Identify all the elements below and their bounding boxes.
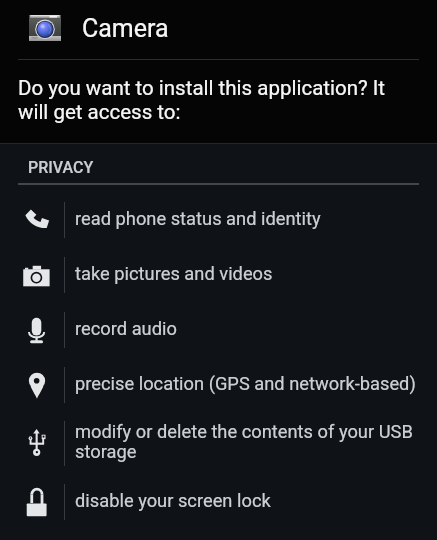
button[interactable]: record audio <box>0 302 437 357</box>
staticText: read phone status and identity <box>75 208 420 229</box>
button[interactable]: modify or delete the contents of your US… <box>0 412 437 474</box>
button[interactable]: take pictures and videos <box>0 247 437 302</box>
staticText: Camera <box>82 14 169 43</box>
button[interactable]: read phone status and identity <box>0 192 437 247</box>
button[interactable]: disable your screen lock <box>0 474 437 529</box>
staticText: PRIVACY <box>28 158 94 177</box>
staticText: record audio <box>75 318 420 339</box>
staticText: precise location (GPS and network-based) <box>75 373 420 394</box>
staticText: take pictures and videos <box>75 263 420 284</box>
staticText: Do you want to install this application?… <box>18 76 400 124</box>
staticText: disable your screen lock <box>75 490 420 511</box>
staticText: modify or delete the contents of your US… <box>75 421 420 463</box>
button[interactable]: precise location (GPS and network-based) <box>0 357 437 412</box>
